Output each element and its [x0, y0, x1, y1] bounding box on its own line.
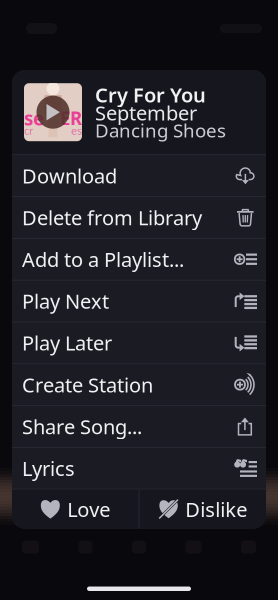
button[interactable]: Play Later: [12, 322, 266, 363]
staticText: Play Next: [22, 288, 109, 314]
staticText: Share Song...: [22, 413, 142, 440]
button[interactable]: Delete from Library: [12, 196, 266, 238]
button[interactable]: Love: [12, 489, 139, 529]
staticText: Play Later: [22, 330, 112, 356]
button[interactable]: Play Next: [12, 280, 266, 322]
button[interactable]: Share Song...: [12, 405, 266, 447]
staticText: cr: [24, 124, 33, 138]
staticText: se: [24, 106, 44, 131]
staticText: Download: [22, 162, 117, 189]
button[interactable]: Create Station: [12, 363, 266, 405]
staticText: Love: [67, 496, 110, 522]
staticText: Dancing Shoes: [95, 118, 226, 143]
staticText: Dislike: [185, 496, 247, 522]
button[interactable]: Add to a Playlist...: [12, 238, 266, 280]
staticText: ER: [60, 106, 82, 131]
button[interactable]: Download: [12, 154, 266, 196]
staticText: Add to a Playlist...: [22, 246, 184, 273]
staticText: es: [71, 124, 82, 138]
staticText: Lyrics: [22, 455, 75, 482]
staticText: Create Station: [22, 371, 153, 398]
staticText: Cry For You: [95, 81, 206, 108]
button[interactable]: Dislike: [139, 489, 266, 529]
staticText: September: [95, 99, 197, 126]
button[interactable]: Lyrics: [12, 447, 266, 489]
staticText: Delete from Library: [22, 204, 202, 231]
